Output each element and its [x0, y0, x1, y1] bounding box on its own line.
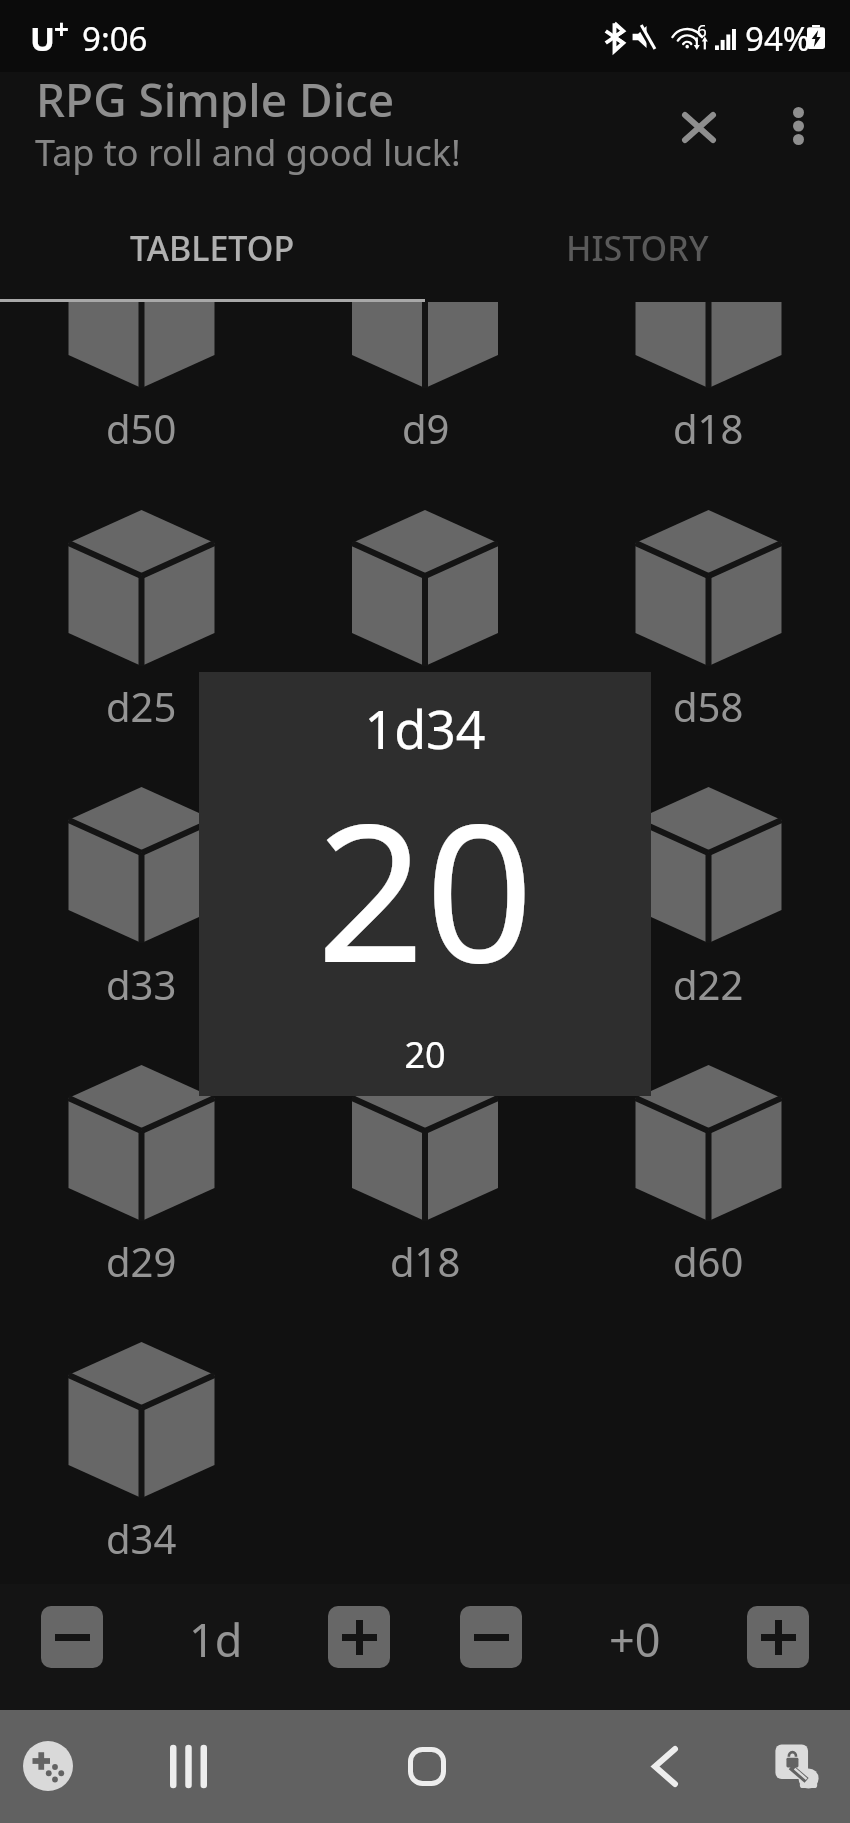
staticText: 20 [316, 759, 534, 1018]
staticText: Tap to roll and good luck! [35, 128, 461, 177]
staticText: 1d [189, 1609, 243, 1670]
staticText: d18 [673, 401, 744, 455]
staticText: TABLETOP [130, 225, 295, 271]
button[interactable]: d33 [0, 757, 283, 987]
staticText: RPG Simple Dice [36, 68, 395, 131]
staticText: 1d34 [364, 693, 486, 764]
button[interactable]: Decrease modifier [460, 1606, 522, 1668]
staticText: d34 [106, 1511, 177, 1565]
staticText: + [54, 11, 69, 46]
button[interactable]: d58 [567, 480, 850, 710]
staticText: d22 [673, 957, 744, 1011]
staticText: 94% [745, 16, 811, 61]
button[interactable]: d18 [567, 302, 850, 432]
button[interactable]: Increase modifier [747, 1606, 809, 1668]
staticText: d9 [402, 401, 450, 455]
staticText: d58 [673, 679, 744, 733]
staticText: 6 [697, 19, 707, 42]
button[interactable]: d50 [0, 302, 283, 432]
button[interactable]: Back [615, 1716, 715, 1816]
button[interactable]: d22 [567, 757, 850, 987]
button[interactable]: d25 [0, 480, 283, 710]
button[interactable]: HISTORY [425, 206, 850, 302]
staticText: U [30, 16, 55, 61]
button[interactable]: d34 [0, 1312, 283, 1542]
button[interactable]: Recents [138, 1716, 238, 1816]
button[interactable]: Decrease dice count [41, 1606, 103, 1668]
button[interactable]: 1d34 [199, 672, 651, 1096]
staticText: d33 [106, 957, 177, 1011]
button[interactable]: Lock screen [747, 1716, 847, 1816]
button[interactable]: d29 [0, 1035, 283, 1265]
button[interactable]: d18 [284, 1035, 567, 1265]
button[interactable]: d9 [284, 480, 567, 710]
staticText: d18 [390, 1234, 461, 1288]
staticText: d25 [106, 679, 177, 733]
button[interactable]: d60 [567, 1035, 850, 1265]
button[interactable]: d9 [284, 302, 567, 432]
staticText: d50 [106, 401, 177, 455]
button[interactable]: Increase dice count [328, 1606, 390, 1668]
button[interactable]: Game launcher [0, 1716, 96, 1816]
staticText: 9:06 [82, 16, 148, 61]
staticText: HISTORY [566, 225, 709, 271]
button[interactable]: TABLETOP [0, 206, 425, 302]
staticText: 20 [404, 1030, 446, 1079]
staticText: d29 [106, 1234, 177, 1288]
button[interactable]: More options [742, 70, 850, 182]
staticText: d9 [402, 679, 450, 733]
staticText: d60 [673, 1234, 744, 1288]
button[interactable]: Close [643, 71, 755, 183]
staticText: +0 [609, 1609, 661, 1670]
button[interactable]: Home [377, 1716, 477, 1816]
